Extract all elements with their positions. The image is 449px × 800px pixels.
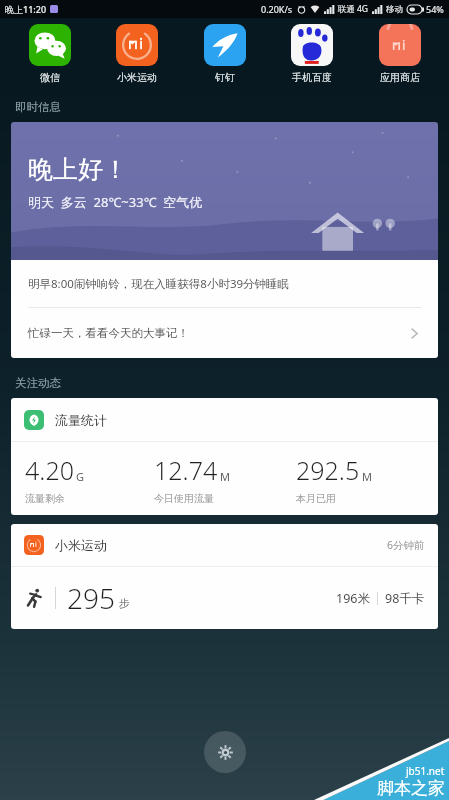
staticText: 本月已用 bbox=[296, 492, 336, 505]
staticText: 忙碌一天，看看今天的大事记！ bbox=[28, 326, 189, 340]
button[interactable]: 明早8:00闹钟响铃，现在入睡获得8小时39分钟睡眠 bbox=[11, 260, 438, 307]
staticText: 即时信息 bbox=[15, 100, 61, 114]
staticText: 小米运动 bbox=[55, 537, 107, 553]
staticText: 小米运动 bbox=[117, 71, 157, 84]
staticText: 关注动态 bbox=[15, 376, 61, 390]
staticText: 应用商店 bbox=[380, 71, 420, 84]
button[interactable]: 流量统计 bbox=[11, 398, 438, 515]
button[interactable]: 应用商店 bbox=[362, 22, 438, 86]
staticText: 微信 bbox=[40, 71, 60, 84]
staticText: 联通 bbox=[338, 4, 355, 15]
staticText: 明早8:00闹钟响铃，现在入睡获得8小时39分钟睡眠 bbox=[28, 276, 290, 292]
staticText: 4.20 bbox=[25, 453, 74, 487]
button[interactable]: 钉钉 bbox=[187, 22, 263, 86]
staticText: 今日使用流量 bbox=[154, 492, 214, 505]
staticText: 12.74 bbox=[154, 453, 218, 487]
staticText: 手机百度 bbox=[292, 71, 332, 84]
staticText: 明天 多云 28℃~33℃ 空气优 bbox=[28, 193, 203, 211]
staticText: G bbox=[76, 469, 85, 484]
staticText: 流量剩余 bbox=[25, 492, 65, 505]
staticText: 4G bbox=[357, 3, 369, 15]
button[interactable]: 微信 bbox=[12, 22, 88, 86]
staticText: 晚上11:20 bbox=[5, 3, 47, 15]
button[interactable]: 小米运动 bbox=[99, 22, 175, 86]
staticText: M bbox=[220, 469, 230, 484]
staticText: 196米 bbox=[336, 590, 370, 607]
staticText: 54% bbox=[426, 3, 444, 15]
staticText: 钉钉 bbox=[215, 71, 235, 84]
staticText: jb51.net bbox=[406, 764, 445, 778]
button[interactable]: 手机百度 bbox=[274, 22, 350, 86]
button[interactable]: 小米运动 bbox=[11, 524, 438, 629]
staticText: 292.5 bbox=[296, 453, 360, 487]
staticText: M bbox=[362, 469, 372, 484]
staticText: 晚上好！ bbox=[28, 154, 128, 185]
staticText: 步 bbox=[119, 596, 130, 610]
button[interactable]: 忙碌一天，看看今天的大事记！ bbox=[11, 308, 438, 358]
button[interactable]: 晚上好！ bbox=[11, 122, 438, 260]
staticText: 0.20K/s bbox=[261, 3, 293, 15]
staticText: 脚本之家 bbox=[377, 778, 445, 799]
staticText: 98千卡 bbox=[385, 590, 425, 607]
staticText: 移动 bbox=[386, 4, 403, 15]
staticText: 6分钟前 bbox=[387, 538, 425, 552]
button[interactable]: Settings bbox=[204, 731, 246, 773]
staticText: 295 bbox=[67, 579, 115, 617]
staticText: 流量统计 bbox=[55, 412, 107, 428]
